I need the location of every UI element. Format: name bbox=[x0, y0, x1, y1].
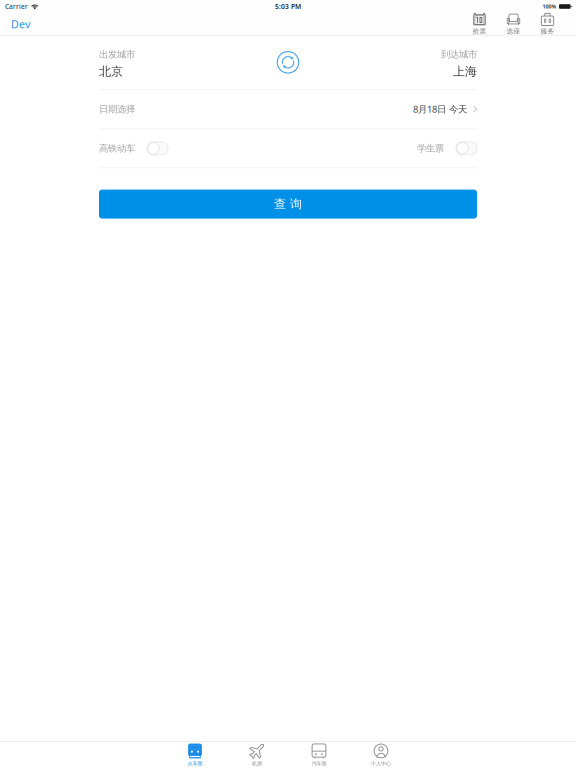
staticText: 选座 bbox=[506, 27, 520, 35]
staticText: 上海 bbox=[453, 64, 477, 79]
staticText: 到达城市 bbox=[441, 49, 477, 60]
button[interactable]: Dev bbox=[0, 13, 41, 34]
staticText: 学生票 bbox=[417, 143, 444, 154]
staticText: 火车票 bbox=[187, 760, 202, 767]
staticText: 查 询 bbox=[274, 197, 302, 211]
button[interactable]: 查 询 bbox=[99, 190, 477, 219]
button[interactable]: 到达城市 bbox=[317, 36, 477, 89]
staticText: 8月18日 今天 bbox=[413, 103, 467, 115]
staticText: 机票 bbox=[252, 760, 262, 767]
button[interactable]: 交换出发与到达城市 bbox=[276, 50, 300, 74]
staticText: 日期选择 bbox=[99, 103, 135, 115]
staticText: 100% bbox=[542, 3, 556, 10]
staticText: Dev bbox=[11, 17, 30, 31]
button[interactable]: 机票 bbox=[226, 742, 288, 768]
staticText: 服务 bbox=[540, 27, 554, 35]
button[interactable]: 汽车票 bbox=[288, 742, 350, 768]
button[interactable]: 高铁动车 bbox=[135, 136, 168, 161]
staticText: 汽车票 bbox=[311, 760, 326, 767]
staticText: 5:03 PM bbox=[275, 2, 301, 11]
button[interactable]: 选座 bbox=[496, 13, 530, 35]
button[interactable]: 日期选择 bbox=[99, 90, 477, 129]
button[interactable]: 出发城市 bbox=[99, 36, 259, 89]
staticText: 北京 bbox=[99, 64, 123, 79]
staticText: Carrier bbox=[5, 2, 28, 11]
button[interactable]: 个人中心 bbox=[350, 742, 412, 768]
staticText: 个人中心 bbox=[371, 760, 391, 767]
button[interactable]: 抢票 bbox=[462, 13, 496, 35]
button[interactable]: 火车票 bbox=[164, 742, 226, 768]
button[interactable]: 服务 bbox=[530, 13, 564, 35]
button[interactable]: 学生票 bbox=[444, 136, 477, 161]
staticText: 高铁动车 bbox=[99, 143, 135, 154]
staticText: 抢票 bbox=[472, 27, 486, 35]
staticText: 出发城市 bbox=[99, 49, 135, 60]
